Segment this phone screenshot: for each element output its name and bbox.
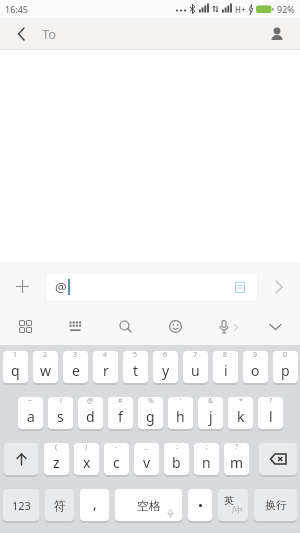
staticText: d bbox=[86, 407, 95, 426]
staticText: ) bbox=[85, 443, 88, 452]
staticText: o bbox=[251, 361, 260, 380]
staticText: 0 bbox=[283, 351, 288, 360]
button[interactable] bbox=[250, 308, 300, 345]
staticText: w bbox=[40, 361, 52, 380]
staticText: ~ bbox=[28, 397, 33, 406]
staticText: m bbox=[230, 453, 244, 472]
staticText: 1 bbox=[13, 351, 18, 360]
staticText: 2 bbox=[43, 351, 48, 360]
staticText: t bbox=[133, 361, 139, 380]
staticText: 123 bbox=[12, 498, 31, 513]
button[interactable]: 换行 bbox=[254, 489, 297, 521]
staticText: 6 bbox=[163, 351, 168, 360]
button[interactable]: ! bbox=[48, 397, 73, 429]
staticText: l bbox=[269, 407, 273, 426]
button[interactable]: 5 bbox=[123, 351, 148, 383]
staticText: @ bbox=[87, 397, 94, 406]
staticText: 4 bbox=[103, 351, 108, 360]
button[interactable]: : bbox=[164, 443, 189, 475]
staticText: 空格 bbox=[137, 498, 161, 513]
staticText: u bbox=[191, 361, 200, 380]
staticText: 16:45 bbox=[5, 3, 29, 15]
staticText: 92% bbox=[277, 3, 295, 15]
button[interactable] bbox=[188, 489, 212, 521]
staticText: To bbox=[42, 25, 57, 43]
staticText: 英 bbox=[224, 494, 234, 507]
staticText: p bbox=[281, 361, 290, 380]
staticText: h bbox=[176, 407, 185, 426]
button[interactable] bbox=[50, 308, 100, 345]
button[interactable] bbox=[10, 23, 32, 45]
button[interactable]: 6 bbox=[153, 351, 178, 383]
button[interactable]: ( bbox=[44, 443, 69, 475]
staticText: q bbox=[11, 361, 20, 380]
staticText: 符 bbox=[54, 498, 66, 513]
button[interactable]: ? bbox=[258, 397, 283, 429]
button[interactable]: 123 bbox=[3, 489, 39, 521]
staticText: f bbox=[118, 407, 123, 426]
button[interactable]: 1 bbox=[3, 351, 28, 383]
staticText: 7 bbox=[193, 351, 198, 360]
staticText: z bbox=[53, 453, 60, 472]
button[interactable]: @ bbox=[45, 272, 258, 302]
staticText: , bbox=[93, 494, 97, 513]
button[interactable] bbox=[150, 308, 200, 345]
staticText: H+ bbox=[235, 4, 246, 15]
button[interactable]: 7 bbox=[183, 351, 208, 383]
button[interactable] bbox=[4, 443, 38, 475]
staticText: % bbox=[148, 397, 154, 406]
staticText: n bbox=[202, 453, 211, 472]
staticText: ? bbox=[269, 397, 273, 406]
staticText: k bbox=[237, 407, 245, 426]
staticText: : bbox=[176, 443, 178, 452]
button[interactable] bbox=[100, 308, 150, 345]
button[interactable] bbox=[258, 262, 300, 303]
button[interactable] bbox=[0, 308, 50, 345]
staticText: * bbox=[239, 397, 243, 406]
button[interactable]: ' bbox=[168, 397, 193, 429]
button[interactable]: # bbox=[108, 397, 133, 429]
staticText: ! bbox=[60, 397, 62, 406]
button[interactable]: 符 bbox=[45, 489, 74, 521]
button[interactable]: 2 bbox=[33, 351, 58, 383]
button[interactable] bbox=[200, 308, 250, 345]
staticText: y bbox=[162, 361, 170, 380]
staticText: g bbox=[146, 407, 155, 426]
button[interactable]: , bbox=[80, 489, 109, 521]
staticText: 9 bbox=[253, 351, 258, 360]
staticText: b bbox=[172, 453, 181, 472]
button[interactable] bbox=[259, 443, 297, 475]
staticText: ( bbox=[55, 443, 58, 452]
button[interactable]: ? bbox=[224, 443, 249, 475]
button[interactable]: @ bbox=[78, 397, 103, 429]
button[interactable]: 英 bbox=[218, 489, 248, 521]
staticText: ? bbox=[235, 443, 239, 452]
staticText: ' bbox=[180, 397, 182, 406]
staticText: c bbox=[113, 453, 120, 472]
button[interactable] bbox=[0, 262, 45, 303]
staticText: v bbox=[143, 453, 151, 472]
staticText: i bbox=[224, 361, 228, 380]
staticText: _ bbox=[145, 443, 149, 452]
button[interactable]: 0 bbox=[273, 351, 298, 383]
button[interactable]: _ bbox=[134, 443, 159, 475]
button[interactable]: ~ bbox=[18, 397, 43, 429]
button[interactable]: 3 bbox=[63, 351, 88, 383]
button[interactable]: - bbox=[104, 443, 129, 475]
button[interactable]: 8 bbox=[213, 351, 238, 383]
staticText: ; bbox=[206, 443, 208, 452]
staticText: a bbox=[27, 407, 35, 426]
staticText: 8 bbox=[223, 351, 228, 360]
button[interactable]: 9 bbox=[243, 351, 268, 383]
staticText: @ bbox=[55, 278, 67, 296]
staticText: r bbox=[103, 361, 109, 380]
button[interactable]: * bbox=[228, 397, 253, 429]
button[interactable] bbox=[264, 21, 290, 47]
button[interactable]: ) bbox=[74, 443, 99, 475]
button[interactable]: & bbox=[198, 397, 223, 429]
staticText: e bbox=[72, 361, 80, 380]
button[interactable]: 空格 bbox=[115, 489, 182, 521]
button[interactable]: 4 bbox=[93, 351, 118, 383]
button[interactable]: ; bbox=[194, 443, 219, 475]
button[interactable]: % bbox=[138, 397, 163, 429]
